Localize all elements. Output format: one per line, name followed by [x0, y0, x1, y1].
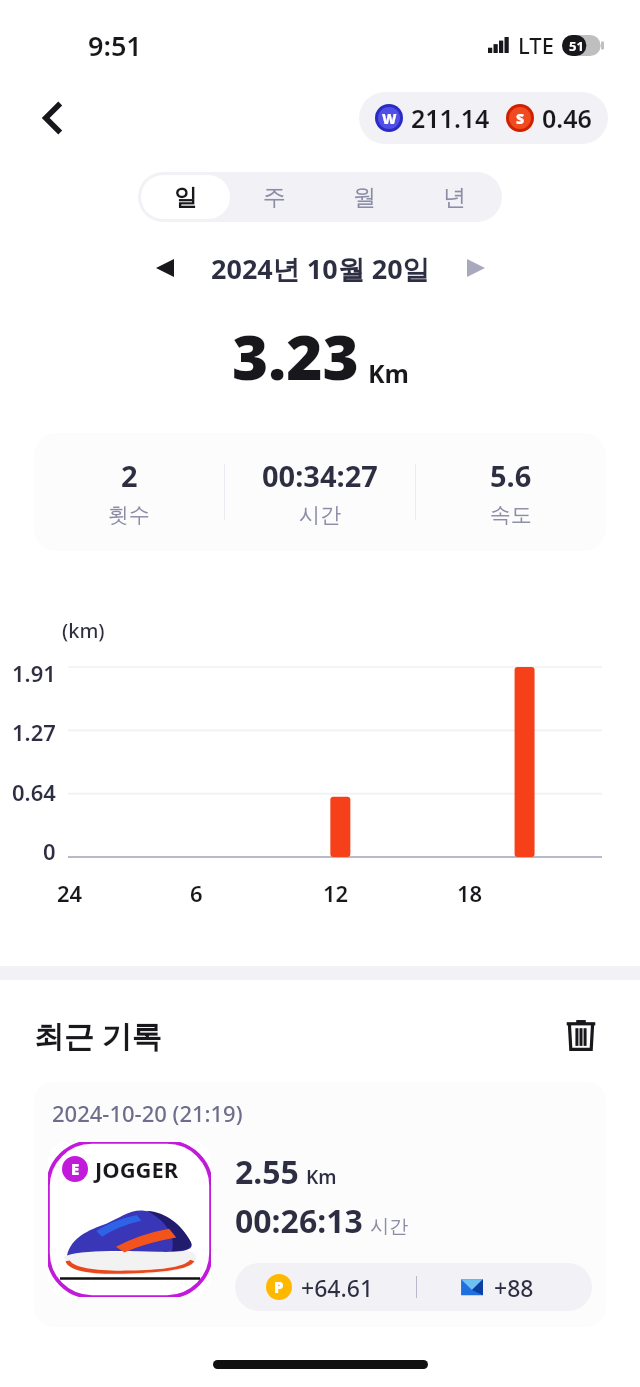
staticText: Km — [368, 356, 409, 390]
button[interactable]: 월 — [319, 175, 409, 219]
staticText: 최근 기록 — [34, 1015, 162, 1056]
staticText: 51 — [569, 37, 584, 55]
staticText: 0 — [43, 836, 56, 866]
staticText: 5.6 — [490, 456, 532, 495]
button[interactable]: P — [235, 1263, 592, 1311]
button[interactable]: Back — [28, 92, 80, 144]
staticText: P — [274, 1277, 284, 1297]
button[interactable]: Next day — [456, 248, 496, 288]
staticText: S — [516, 109, 525, 128]
staticText: 9:51 — [88, 27, 142, 64]
button[interactable]: Previous day — [145, 248, 185, 288]
staticText: 1.27 — [12, 717, 56, 747]
staticText: 2024년 10월 20일 — [211, 250, 430, 287]
staticText: 월 — [353, 183, 376, 212]
staticText: 횟수 — [108, 502, 150, 528]
staticText: 211.14 — [411, 101, 490, 135]
staticText: 일 — [174, 183, 197, 212]
staticText: +88 — [494, 1272, 534, 1303]
staticText: Km — [306, 1164, 337, 1190]
button[interactable]: 일 — [141, 175, 230, 219]
staticText: 00:34:27 — [262, 456, 378, 495]
staticText: 속도 — [490, 502, 532, 528]
staticText: 18 — [457, 878, 483, 908]
staticText: 0.46 — [542, 101, 592, 135]
staticText: 2.55 — [235, 1150, 299, 1194]
staticText: W — [382, 109, 397, 128]
staticText: 3.23 — [232, 314, 359, 398]
staticText: 6 — [190, 878, 203, 908]
staticText: 00:26:13 — [235, 1199, 363, 1243]
staticText: 2 — [121, 456, 138, 495]
staticText: LTE — [518, 30, 554, 60]
button[interactable]: Delete records — [556, 1010, 606, 1060]
staticText: 시간 — [370, 1215, 408, 1239]
staticText: 년 — [443, 183, 466, 212]
staticText: 주 — [263, 183, 286, 212]
button[interactable]: 2024-10-20 (21:19) — [34, 1082, 606, 1327]
staticText: 1.91 — [12, 658, 56, 688]
button[interactable]: 2 — [34, 433, 606, 551]
staticText: 24 — [57, 878, 83, 908]
button[interactable]: 년 — [409, 175, 499, 219]
button[interactable]: 주 — [230, 175, 319, 219]
button[interactable]: W — [359, 92, 608, 144]
staticText: 0.64 — [12, 777, 56, 807]
staticText: JOGGER — [95, 1154, 179, 1184]
staticText: E — [71, 1159, 80, 1179]
staticText: (km) — [62, 617, 105, 644]
staticText: 2024-10-20 (21:19) — [52, 1098, 243, 1128]
staticText: 시간 — [299, 502, 341, 528]
staticText: +64.61 — [301, 1272, 374, 1303]
staticText: 12 — [323, 878, 349, 908]
